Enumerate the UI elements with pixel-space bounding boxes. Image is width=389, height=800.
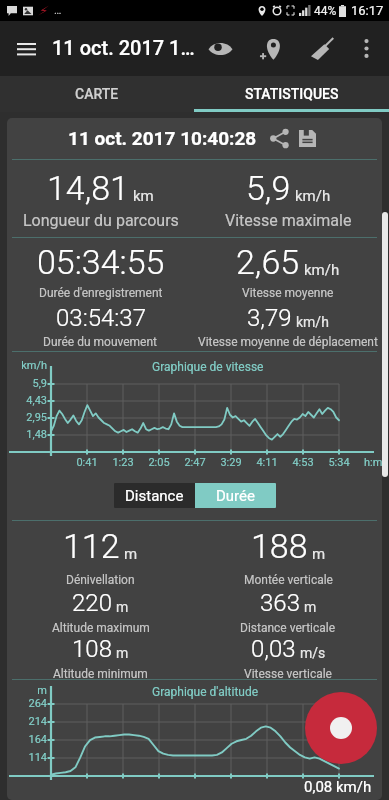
staticText: 03:54:37 [56,304,146,332]
staticText: 5,9 [7,377,47,390]
button[interactable]: Show on map [196,21,244,76]
staticText: km/h [295,187,331,205]
button[interactable]: Clear track [298,21,346,76]
staticText: 188 [251,526,308,566]
staticText: km/h [304,261,340,279]
staticText: 3,79 [247,304,292,332]
staticText: Durée d'enregistrement [39,286,163,300]
staticText: … [54,4,62,17]
staticText: Altitude minimum [53,667,148,681]
staticText: 0,08 km/h [304,778,372,796]
staticText: Durée du mouvement [43,335,158,349]
staticText: Vitesse maximale [225,211,352,230]
button[interactable]: More options [342,21,389,76]
staticText: Dénivellation [66,573,135,587]
staticText: 5,9 [246,168,291,208]
staticText: Distance [125,487,184,505]
staticText: 2:05 [141,456,177,469]
staticText: m [124,545,138,563]
staticText: km/h [296,314,329,330]
staticText: 5:34 [321,456,357,469]
staticText: 11 oct. 2017 1… [52,36,195,59]
staticText: 1,48 [7,428,47,441]
button[interactable]: CARTE [0,76,194,112]
staticText: 2,95 [7,411,47,424]
button[interactable]: Open navigation drawer [2,21,50,76]
staticText: CARTE [75,86,119,102]
button[interactable]: Start recording [305,692,377,764]
staticText: Altitude maximum [52,621,150,635]
staticText: 2,65 [236,242,300,282]
button[interactable]: STATISTIQUES [194,76,389,112]
staticText: 2:47 [177,456,213,469]
staticText: 4,43 [7,394,47,407]
staticText: 264 [7,697,47,710]
staticText: 214 [7,715,47,728]
staticText: m [7,684,47,697]
staticText: 3:29 [213,456,249,469]
staticText: 05:34:55 [37,242,165,282]
staticText: Vitesse verticale [244,667,332,681]
staticText: 363 [260,589,300,617]
button[interactable]: Add waypoint [247,21,295,76]
staticText: STATISTIQUES [245,86,339,102]
staticText: Distance verticale [240,621,336,635]
staticText: Graphique de vitesse [152,360,264,374]
staticText: Vitesse moyenne [242,286,334,300]
staticText: m [116,599,129,615]
staticText: Durée [216,487,255,505]
staticText: km [133,187,154,205]
staticText: 1:23 [105,456,141,469]
staticText: 16:17 [351,3,384,18]
staticText: m [312,545,326,563]
button[interactable]: Durée [195,483,276,508]
staticText: 11 oct. 2017 10:40:28 [68,127,257,149]
staticText: 164 [7,733,47,746]
staticText: 4:53 [285,456,321,469]
button[interactable]: Save [293,124,321,152]
staticText: Graphique d'altitude [152,685,259,699]
staticText: m/s [300,645,326,661]
button[interactable]: Distance [114,483,195,508]
staticText: 114 [7,751,47,764]
staticText: 112 [63,526,120,566]
staticText: 44% [314,4,337,18]
staticText: m [116,645,129,661]
staticText: Vitesse moyenne de déplacement [198,335,378,349]
staticText: m [304,599,317,615]
staticText: Montée verticale [244,573,333,587]
staticText: km/h [7,359,47,372]
staticText: 220 [72,589,112,617]
staticText: h:m [364,456,382,469]
staticText: 14,81 [47,168,129,208]
staticText: 0:41 [69,456,105,469]
button[interactable]: Share [265,124,293,152]
staticText: 4:11 [249,456,285,469]
staticText: 0,03 [251,635,296,663]
staticText: Longueur du parcours [23,211,179,230]
staticText: 108 [72,635,112,663]
